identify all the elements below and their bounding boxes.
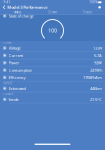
button[interactable]: Consumption [0, 67, 105, 74]
button[interactable]: Voltage [0, 44, 105, 52]
button[interactable]: Status [0, 10, 35, 14]
staticText: Inside [9, 97, 19, 102]
button[interactable]: Current [0, 52, 105, 59]
button[interactable]: Power [0, 59, 105, 66]
staticText: Efficiency [9, 75, 26, 80]
button[interactable]: Charge [70, 10, 105, 14]
staticText: 100 [48, 27, 57, 34]
staticText: Consumption [9, 67, 32, 73]
staticText: POWER [3, 41, 12, 44]
staticText: Status [14, 10, 21, 14]
staticText: Charge [82, 10, 92, 14]
staticText: 176Wh/km [83, 75, 102, 80]
staticText: Power [9, 60, 20, 65]
staticText: 13.8V [93, 45, 102, 51]
button[interactable]: Climate [35, 10, 70, 14]
staticText: 446km [90, 86, 102, 91]
staticText: Estimated [9, 86, 26, 91]
staticText: 100% [89, 0, 97, 4]
staticText: CLIMATE [3, 92, 13, 96]
staticText: RANGE [3, 81, 12, 85]
button[interactable]: Estimated [0, 85, 105, 92]
staticText: 21.5°C [90, 97, 102, 102]
staticText: Model 3 Performance [7, 5, 47, 10]
staticText: Current [9, 53, 23, 58]
staticText: Voltage [9, 45, 21, 51]
staticText: 6.7A [94, 53, 102, 58]
button[interactable]: Back [1, 5, 7, 9]
staticText: 241Wh [90, 67, 102, 73]
button[interactable]: Inside [0, 96, 105, 103]
staticText: 92W [94, 60, 102, 65]
staticText: 9:41 [3, 0, 10, 4]
button[interactable]: More [95, 3, 104, 11]
staticText: State of charge [9, 13, 34, 19]
staticText: Climate [47, 10, 57, 14]
button[interactable]: Efficiency [0, 74, 105, 81]
